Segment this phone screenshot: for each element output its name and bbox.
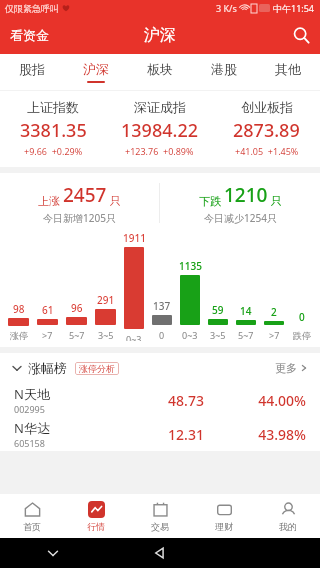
- staticText: 14: [240, 304, 252, 318]
- button[interactable]: 交易: [128, 494, 192, 538]
- staticText: 1135: [179, 259, 202, 273]
- staticText: 1210: [224, 182, 268, 208]
- staticText: 98: [13, 302, 25, 316]
- staticText: 我的: [279, 521, 297, 532]
- button[interactable]: 上证指数: [0, 99, 106, 157]
- staticText: 板块: [147, 61, 173, 77]
- staticText: 291: [97, 293, 115, 307]
- staticText: 深证成指: [134, 99, 186, 115]
- button[interactable]: 港股: [192, 54, 256, 90]
- staticText: 61: [42, 303, 54, 317]
- button[interactable]: Hide keyboard: [0, 538, 106, 568]
- staticText: 605158: [14, 437, 45, 449]
- staticText: 跌停: [293, 330, 311, 341]
- button[interactable]: 板块: [128, 54, 192, 90]
- button[interactable]: Back: [106, 538, 213, 568]
- staticText: N华达: [14, 419, 50, 437]
- staticText: >7: [269, 329, 280, 341]
- staticText: 5~7: [238, 329, 254, 341]
- staticText: +123.76 +0.89%: [125, 145, 194, 157]
- staticText: 创业板指: [241, 99, 293, 115]
- staticText: 48.73: [146, 391, 226, 410]
- button[interactable]: Search: [283, 21, 320, 50]
- button[interactable]: 首页: [0, 494, 64, 538]
- staticText: 1911: [123, 231, 146, 245]
- staticText: 今日新增1205只: [43, 211, 116, 225]
- button[interactable]: 看资金: [0, 21, 59, 49]
- staticText: +9.66 +0.29%: [24, 145, 83, 157]
- staticText: 5~7: [69, 329, 85, 341]
- staticText: 3381.35: [20, 118, 87, 143]
- staticText: 下跌: [199, 193, 224, 208]
- button[interactable]: 下跌: [160, 181, 320, 225]
- staticText: 0: [299, 310, 305, 324]
- button[interactable]: 行情: [64, 494, 128, 538]
- staticText: 44.00%: [226, 391, 306, 410]
- staticText: 其他: [275, 61, 301, 77]
- button[interactable]: 其他: [256, 54, 320, 90]
- staticText: N天地: [14, 385, 50, 403]
- staticText: 43.98%: [226, 425, 306, 444]
- staticText: 12.31: [146, 425, 226, 444]
- button[interactable]: 股指: [0, 54, 64, 90]
- staticText: 涨停: [10, 330, 28, 341]
- button[interactable]: N华达: [0, 417, 320, 451]
- staticText: 港股: [211, 61, 237, 77]
- staticText: 看资金: [10, 27, 49, 43]
- staticText: 137: [153, 299, 171, 313]
- button[interactable]: 沪深: [64, 54, 128, 90]
- staticText: 2: [271, 305, 277, 319]
- staticText: 涨停分析: [79, 363, 115, 374]
- button[interactable]: 涨停分析: [75, 362, 119, 375]
- staticText: 仅限紧急呼叫: [5, 3, 59, 14]
- staticText: 上证指数: [27, 99, 79, 115]
- button[interactable]: 更多: [275, 361, 308, 375]
- button[interactable]: 我的: [256, 494, 320, 538]
- staticText: +41.05 +1.45%: [235, 145, 299, 157]
- staticText: 13984.22: [121, 118, 198, 143]
- staticText: 首页: [23, 521, 41, 532]
- button[interactable]: 创业板指: [213, 99, 320, 157]
- staticText: 0~3: [126, 333, 142, 341]
- button[interactable]: 上涨: [0, 181, 159, 225]
- staticText: 理财: [215, 521, 233, 532]
- staticText: 002995: [14, 403, 45, 415]
- staticText: 沪深: [83, 61, 109, 77]
- staticText: 今日减少1254只: [204, 211, 277, 225]
- staticText: 3~5: [98, 329, 114, 341]
- staticText: 沪深: [144, 25, 176, 45]
- staticText: 交易: [151, 521, 169, 532]
- staticText: 行情: [87, 521, 105, 532]
- staticText: 2457: [63, 182, 107, 208]
- staticText: 只: [268, 193, 282, 208]
- staticText: 股指: [19, 61, 45, 77]
- staticText: 2873.89: [233, 118, 300, 143]
- staticText: 上涨: [38, 193, 63, 208]
- button[interactable]: 深证成指: [106, 99, 213, 157]
- button[interactable]: 理财: [192, 494, 256, 538]
- staticText: 96: [71, 301, 83, 315]
- staticText: 中午11:54: [273, 2, 315, 14]
- staticText: 0~3: [182, 329, 198, 341]
- staticText: 涨幅榜: [28, 360, 67, 376]
- staticText: 0: [159, 329, 165, 341]
- staticText: 3~5: [210, 329, 226, 341]
- staticText: 只: [107, 193, 121, 208]
- staticText: 59: [212, 303, 224, 317]
- staticText: >7: [42, 329, 53, 341]
- staticText: 3 K/s: [216, 2, 237, 14]
- button[interactable]: N天地: [0, 383, 320, 417]
- staticText: 更多: [275, 361, 297, 375]
